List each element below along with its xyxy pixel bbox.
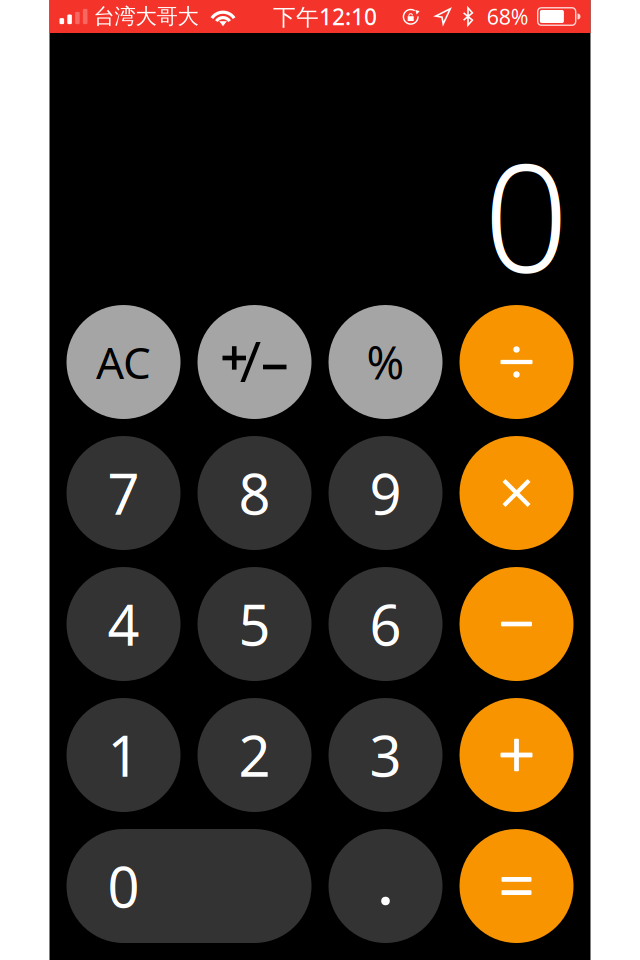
button[interactable]: Multiply [459,436,573,550]
button[interactable]: Divide [459,305,573,419]
button[interactable]: 2 [197,698,311,812]
button[interactable]: Decimal point [328,829,442,943]
button[interactable]: Plus [459,698,573,812]
staticText: 7 [107,456,139,530]
staticText: % [366,332,404,392]
staticText: 0 [107,849,139,923]
staticText: 9 [369,456,401,530]
button[interactable]: 8 [197,436,311,550]
staticText: 2 [238,718,270,792]
staticText: 8 [238,456,270,530]
staticText: 台湾大哥大 [93,3,198,30]
staticText: 3 [369,718,401,792]
button[interactable]: Plus minus [197,305,311,419]
button[interactable]: 7 [66,436,180,550]
staticText: 0 [483,116,568,314]
button[interactable]: % [328,305,442,419]
button[interactable]: 4 [66,567,180,681]
staticText: 68% [487,2,529,31]
button[interactable]: 0 [66,829,311,943]
button[interactable]: Minus [459,567,573,681]
staticText: 4 [107,587,139,661]
staticText: 5 [238,587,270,661]
staticText: 6 [369,587,401,661]
button[interactable]: Equals [459,829,573,943]
button[interactable]: 9 [328,436,442,550]
button[interactable]: 5 [197,567,311,681]
button[interactable]: 3 [328,698,442,812]
button[interactable]: 6 [328,567,442,681]
button[interactable]: AC [66,305,180,419]
staticText: 下午12:10 [273,1,377,31]
staticText: 1 [107,718,139,792]
button[interactable]: 1 [66,698,180,812]
staticText: AC [96,333,151,391]
